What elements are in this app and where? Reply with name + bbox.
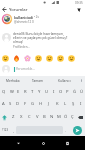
button[interactable]: Ş [69, 99, 77, 109]
button[interactable]: I [50, 87, 57, 97]
staticText: Q [2, 89, 6, 95]
button[interactable]: R [22, 87, 29, 97]
button[interactable]: J [45, 99, 53, 109]
button[interactable]: D [14, 99, 21, 109]
button[interactable]: Ç [69, 112, 76, 122]
button[interactable]: Home [36, 136, 50, 150]
staticText: Ü [80, 89, 84, 95]
staticText: @ahmetc12 0 [14, 20, 34, 24]
staticText: Profilinden... [13, 45, 30, 49]
staticText: A [2, 101, 5, 107]
staticText: 09:35 [75, 1, 83, 5]
button[interactable]: I [77, 99, 85, 109]
button[interactable]: N [48, 112, 55, 122]
button[interactable]: M [55, 112, 62, 122]
button[interactable]: Tamam [25, 76, 51, 85]
button[interactable]: Filter [74, 5, 83, 14]
button[interactable]: Y [36, 87, 43, 97]
button[interactable]: Q [0, 87, 8, 97]
button[interactable]: O [57, 87, 64, 97]
staticText: Ğ [73, 89, 77, 95]
button[interactable]: A [0, 99, 7, 109]
staticText: kullaniciadi [14, 15, 33, 19]
staticText: I [80, 101, 82, 107]
button[interactable]: Reaction 3 [24, 54, 35, 63]
staticText: • 2s [34, 15, 39, 19]
button[interactable]: Kullanıcı [51, 76, 77, 85]
staticText: H [39, 101, 43, 107]
staticText: Kullanıcı [58, 79, 71, 83]
staticText: Ş [72, 101, 75, 107]
button[interactable]: L [61, 99, 69, 109]
button[interactable]: kullaniciadi [2, 14, 83, 24]
staticText: N [50, 114, 54, 120]
staticText: E [17, 89, 20, 95]
button[interactable]: Ğ [71, 87, 78, 97]
button[interactable]: G [29, 99, 37, 109]
staticText: . [65, 128, 66, 133]
button[interactable]: T [29, 87, 36, 97]
button[interactable]: X [17, 112, 25, 122]
button[interactable]: Ü [78, 87, 85, 97]
button[interactable]: Merhaba [0, 76, 25, 85]
staticText: W [10, 89, 14, 95]
staticText: ellerin ve paylaşım çok güzel olmuş!! [13, 36, 68, 40]
button[interactable]: Back [11, 136, 25, 150]
button[interactable]: Reaction 6 [57, 54, 68, 63]
button[interactable]: Reaction 1 [2, 54, 13, 63]
staticText: Ç [71, 114, 74, 120]
button[interactable]: Reaction 2 [13, 54, 24, 63]
staticText: S [9, 101, 12, 107]
staticText: K [56, 101, 59, 107]
button[interactable]: Z [9, 112, 17, 122]
staticText: V [36, 114, 39, 120]
staticText: G [31, 101, 35, 107]
button[interactable]: Reaction 5 [46, 54, 57, 63]
button[interactable]: U [43, 87, 50, 97]
button[interactable]: Ö [62, 112, 69, 122]
button[interactable]: F [21, 99, 29, 109]
staticText: I [53, 89, 55, 95]
staticText: Tamam [32, 79, 44, 83]
button[interactable]: K [53, 99, 61, 109]
button[interactable]: Yorum ekle... [14, 65, 83, 73]
staticText: Y [38, 89, 41, 95]
button[interactable]: Recents [60, 136, 74, 150]
button[interactable]: P [64, 87, 71, 97]
button[interactable]: ?123 [0, 124, 11, 136]
button[interactable]: deniz06 Bunu böyle hazırlamışsın, [2, 32, 83, 49]
button[interactable]: E [15, 87, 22, 97]
button[interactable]: B [41, 112, 48, 122]
staticText: D [16, 101, 20, 107]
staticText: C [28, 114, 31, 120]
staticText: F [24, 101, 27, 107]
staticText: Z [12, 114, 15, 120]
staticText: Merhaba [6, 79, 20, 83]
button[interactable]: Back [0, 5, 9, 14]
staticText: Yorumlar [9, 7, 28, 13]
button[interactable]: Backspace [76, 112, 85, 122]
staticText: Yorum ekle... [16, 67, 35, 71]
button[interactable]: Reaction 7 [68, 54, 79, 63]
button[interactable]: Shift [0, 112, 9, 122]
staticText: U [45, 89, 49, 95]
staticText: Ö [64, 114, 68, 120]
staticText: R [24, 89, 27, 95]
staticText: deniz06 Bunu böyle hazırlamışsın, [13, 32, 64, 36]
staticText: X [20, 114, 23, 120]
staticText: olmuş! [13, 40, 24, 44]
button[interactable]: Comma [11, 124, 16, 136]
button[interactable]: H [37, 99, 45, 109]
staticText: B [43, 114, 46, 120]
button[interactable]: More suggestions [77, 76, 85, 85]
button[interactable]: Reaction 4 [35, 54, 46, 63]
button[interactable]: C [25, 112, 33, 122]
button[interactable]: S [7, 99, 14, 109]
button[interactable]: Send [70, 124, 85, 136]
button[interactable]: V [33, 112, 41, 122]
staticText: L [64, 101, 67, 107]
button[interactable]: W [8, 87, 15, 97]
staticText: J [48, 101, 50, 107]
